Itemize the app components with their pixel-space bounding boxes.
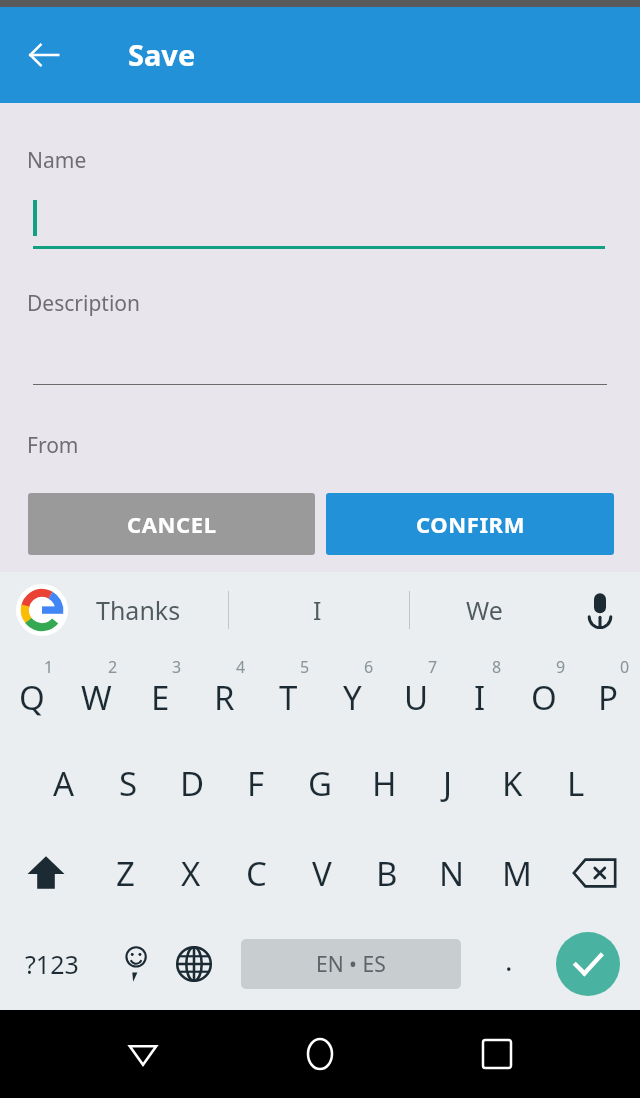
button[interactable]: H (352, 738, 416, 828)
staticText: D (180, 761, 205, 806)
staticText: Description (27, 289, 141, 318)
button[interactable]: D (160, 738, 224, 828)
button[interactable]: Z (92, 828, 158, 918)
button[interactable]: I (448, 648, 512, 738)
button[interactable]: Back (110, 1021, 176, 1087)
staticText: I (474, 675, 486, 720)
staticText: 6 (364, 656, 374, 678)
button[interactable]: B (354, 828, 419, 918)
staticText: F (247, 761, 265, 806)
staticText: B (376, 851, 398, 896)
button[interactable]: X (158, 828, 224, 918)
button[interactable]: Enter (556, 932, 620, 996)
staticText: From (27, 431, 79, 460)
button[interactable]: I (313, 593, 322, 627)
staticText: L (567, 761, 585, 806)
staticText: T (279, 675, 298, 720)
staticText: EN • ES (316, 950, 386, 979)
staticText: . (505, 941, 513, 979)
staticText: J (443, 761, 453, 806)
staticText: W (81, 675, 112, 720)
button[interactable]: U (384, 648, 448, 738)
button[interactable]: G (288, 738, 352, 828)
button[interactable]: V (289, 828, 354, 918)
staticText: S (119, 761, 138, 806)
button[interactable]: F (224, 738, 288, 828)
button[interactable]: Backspace (549, 828, 640, 918)
staticText: Y (343, 675, 362, 720)
staticText: 2 (108, 656, 118, 678)
button[interactable]: ?123 (6, 918, 98, 1010)
button[interactable] (33, 325, 607, 385)
staticText: M (502, 851, 532, 896)
button[interactable]: C (224, 828, 289, 918)
staticText: A (53, 761, 75, 806)
button[interactable]: O (512, 648, 576, 738)
button[interactable]: E (128, 648, 192, 738)
button[interactable]: Q (0, 648, 64, 738)
staticText: K (502, 761, 523, 806)
staticText: 0 (620, 656, 630, 678)
staticText: O (531, 675, 557, 720)
staticText: Save (128, 35, 196, 74)
button[interactable]: Shift (0, 828, 92, 918)
staticText: U (404, 675, 429, 720)
staticText: 7 (428, 656, 438, 678)
staticText: P (598, 675, 618, 720)
button[interactable]: A (32, 738, 96, 828)
button[interactable]: J (416, 738, 480, 828)
staticText: Q (19, 675, 45, 720)
button[interactable]: EN • ES (241, 939, 461, 989)
button[interactable]: Google (14, 582, 70, 638)
button[interactable]: R (192, 648, 256, 738)
staticText: X (181, 851, 201, 896)
button[interactable]: S (96, 738, 160, 828)
staticText: 8 (492, 656, 502, 678)
button[interactable]: W (64, 648, 128, 738)
staticText: CANCEL (127, 509, 217, 539)
staticText: H (372, 761, 397, 806)
staticText: 9 (556, 656, 566, 678)
staticText: R (214, 675, 235, 720)
staticText: N (439, 851, 465, 896)
staticText: CONFIRM (416, 509, 525, 539)
staticText: E (151, 675, 170, 720)
button[interactable]: T (256, 648, 320, 738)
button[interactable]: Thanks (96, 593, 181, 627)
staticText: 4 (236, 656, 246, 678)
button[interactable]: Change language (158, 918, 230, 1010)
staticText: Name (27, 146, 87, 175)
button[interactable]: CANCEL (28, 493, 315, 555)
button[interactable]: Back (14, 25, 74, 85)
button[interactable]: N (419, 828, 484, 918)
button[interactable]: . (478, 918, 540, 1010)
button[interactable]: P (576, 648, 640, 738)
button[interactable] (28, 181, 608, 253)
staticText: Z (116, 851, 135, 896)
button[interactable]: Recent apps (464, 1021, 530, 1087)
button[interactable]: K (480, 738, 544, 828)
staticText: ?123 (25, 947, 79, 981)
staticText: G (308, 761, 333, 806)
button[interactable]: CONFIRM (326, 493, 614, 555)
button[interactable]: M (484, 828, 549, 918)
button[interactable]: We (466, 593, 503, 627)
staticText: 5 (300, 656, 310, 678)
staticText: 1 (44, 656, 54, 678)
button[interactable]: Home (287, 1021, 353, 1087)
staticText: 3 (172, 656, 182, 678)
staticText: V (312, 851, 332, 896)
button[interactable]: Emoji and comma (98, 918, 170, 1010)
staticText: C (246, 851, 267, 896)
button[interactable]: L (544, 738, 608, 828)
button[interactable]: Voice input (572, 582, 628, 638)
button[interactable]: Y (320, 648, 384, 738)
